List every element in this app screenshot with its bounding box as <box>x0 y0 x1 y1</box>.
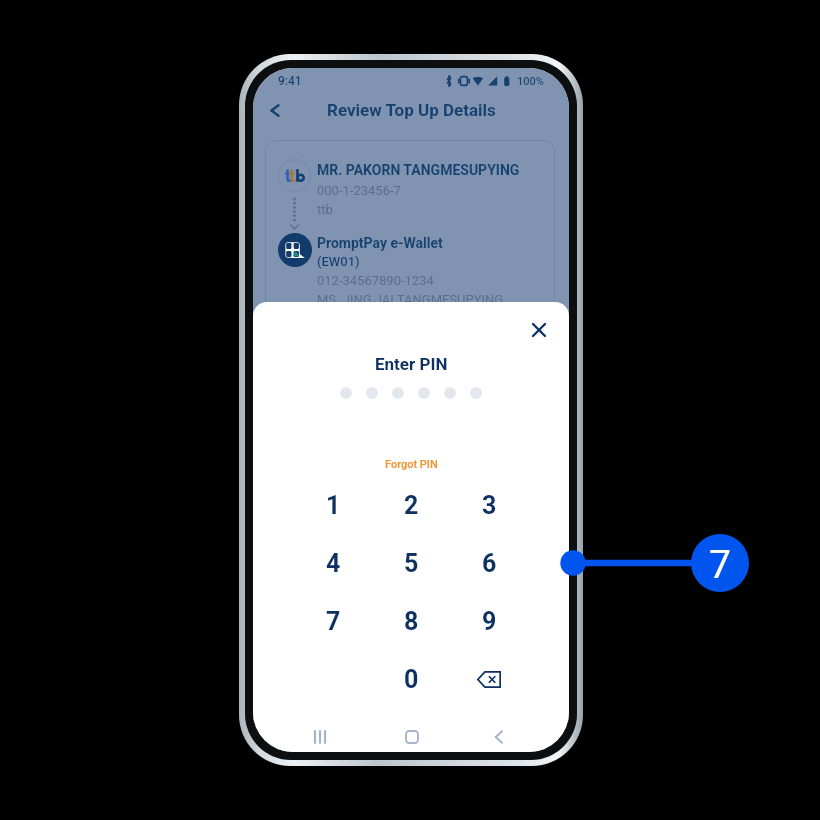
button[interactable]: Close <box>519 310 559 350</box>
staticText: ttb <box>317 202 333 217</box>
staticText: 000-1-23456-7 <box>317 183 401 198</box>
button[interactable]: Step 7 <box>691 534 749 592</box>
staticText: 8 <box>404 607 419 636</box>
button[interactable]: 3 <box>450 476 528 534</box>
staticText: (EW01) <box>317 254 360 269</box>
button[interactable]: 5 <box>372 534 450 592</box>
button[interactable]: 8 <box>372 592 450 650</box>
button[interactable]: 6 <box>450 534 528 592</box>
button[interactable]: 2 <box>372 476 450 534</box>
button[interactable]: 1 <box>294 476 372 534</box>
staticText: 100% <box>517 75 544 88</box>
staticText: 2 <box>404 491 419 520</box>
button[interactable]: 4 <box>294 534 372 592</box>
button[interactable]: Back <box>482 720 516 752</box>
staticText: PromptPay e-Wallet <box>317 235 443 251</box>
staticText: 5 <box>404 549 419 578</box>
button[interactable]: 9 <box>450 592 528 650</box>
staticText: 6 <box>482 549 497 578</box>
staticText: 9:41 <box>278 74 302 88</box>
staticText: MS. JING JAI TANGMESUPYING <box>317 292 504 307</box>
staticText: MR. PAKORN TANGMESUPYING <box>317 162 520 178</box>
staticText: 0 <box>404 665 419 694</box>
staticText: 012-34567890-1234 <box>317 273 434 288</box>
staticText: 7 <box>326 607 341 636</box>
staticText: Enter PIN <box>375 354 448 374</box>
button[interactable]: Back <box>257 92 293 128</box>
button[interactable]: Recent apps <box>303 720 337 752</box>
other: Delete <box>475 668 503 690</box>
staticText: 3 <box>482 491 497 520</box>
staticText: 4 <box>326 549 341 578</box>
staticText: Review Top Up Details <box>327 100 496 120</box>
button[interactable]: 7 <box>294 592 372 650</box>
button[interactable]: 0 <box>372 650 450 708</box>
button[interactable]: Delete <box>450 650 528 708</box>
staticText: 7 <box>709 542 731 588</box>
button[interactable]: Forgot PIN <box>385 458 438 471</box>
staticText: 1 <box>326 491 341 520</box>
button[interactable]: Home <box>395 720 429 752</box>
staticText: 9 <box>482 607 497 636</box>
